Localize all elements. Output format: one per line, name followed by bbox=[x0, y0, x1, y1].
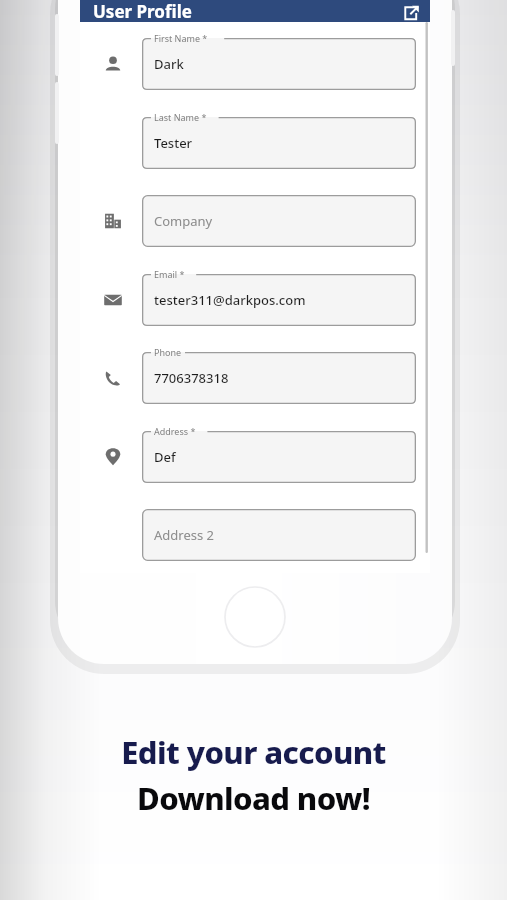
staticText: Tester bbox=[154, 134, 193, 152]
staticText: Edit your account bbox=[121, 731, 386, 773]
button[interactable]: 7706378318 bbox=[142, 352, 416, 404]
staticText: Download now! bbox=[137, 777, 370, 819]
button[interactable]: Company bbox=[142, 195, 416, 247]
button[interactable]: Def bbox=[142, 431, 416, 483]
button[interactable]: Log out bbox=[398, 0, 424, 22]
button[interactable]: Address 2 bbox=[142, 509, 416, 561]
staticText: Company bbox=[154, 212, 213, 230]
staticText: tester311@darkpos.com bbox=[154, 291, 306, 309]
staticText: Email * bbox=[154, 268, 185, 280]
staticText: 7706378318 bbox=[154, 369, 229, 387]
staticText: User Profile bbox=[93, 0, 192, 22]
button[interactable]: Dark bbox=[142, 38, 416, 90]
staticText: First Name * bbox=[154, 32, 208, 44]
staticText: Phone bbox=[154, 346, 182, 358]
button[interactable]: Tester bbox=[142, 117, 416, 169]
staticText: Address 2 bbox=[154, 526, 215, 544]
staticText: Def bbox=[154, 448, 176, 466]
staticText: Dark bbox=[154, 55, 184, 73]
button[interactable]: tester311@darkpos.com bbox=[142, 274, 416, 326]
staticText: Last Name * bbox=[154, 111, 207, 123]
staticText: Address * bbox=[154, 425, 196, 437]
